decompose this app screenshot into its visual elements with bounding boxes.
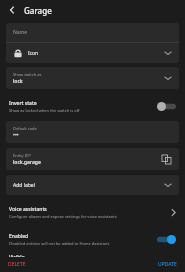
button[interactable]: Entity ID* [6,148,179,170]
staticText: lock.garage [13,159,41,166]
button[interactable] [157,102,176,111]
staticText: UPDATE [158,261,177,268]
button[interactable]: DELETE [7,259,27,270]
staticText: Configure aliases and expose settings fo… [9,214,117,219]
button[interactable] [157,235,176,244]
staticText: Disabled entities will not be added to H… [9,241,110,246]
button[interactable]: Back [4,2,20,18]
staticText: ••• [13,132,19,139]
button[interactable]: UPDATE [157,259,178,270]
button[interactable]: Name [6,23,179,42]
button[interactable]: Icon [6,43,179,63]
staticText: Invert state [9,100,37,107]
button[interactable]: Copy entity ID [160,153,172,165]
button[interactable]: Default code [6,121,179,143]
button[interactable]: Voice assistants [0,200,185,224]
button[interactable]: Invert state [0,94,185,118]
staticText: Default code [13,126,37,131]
staticText: Entity ID* [13,153,32,158]
button[interactable]: Visible [0,253,185,257]
staticText: Icon [28,50,39,57]
staticText: lock [13,78,23,85]
button[interactable]: Show switch as [6,67,179,89]
staticText: Show switch as [13,72,42,77]
staticText: Name [13,29,28,36]
staticText: Garage [24,5,52,16]
staticText: Show as locked when the switch is off [9,108,80,113]
staticText: Voice assistants [9,206,47,213]
staticText: Add label [13,182,35,189]
staticText: DELETE [8,261,26,268]
button[interactable]: Add label [6,175,179,195]
staticText: Visible [9,254,25,257]
staticText: Enabled [9,233,29,240]
button[interactable]: Enabled [0,227,185,251]
